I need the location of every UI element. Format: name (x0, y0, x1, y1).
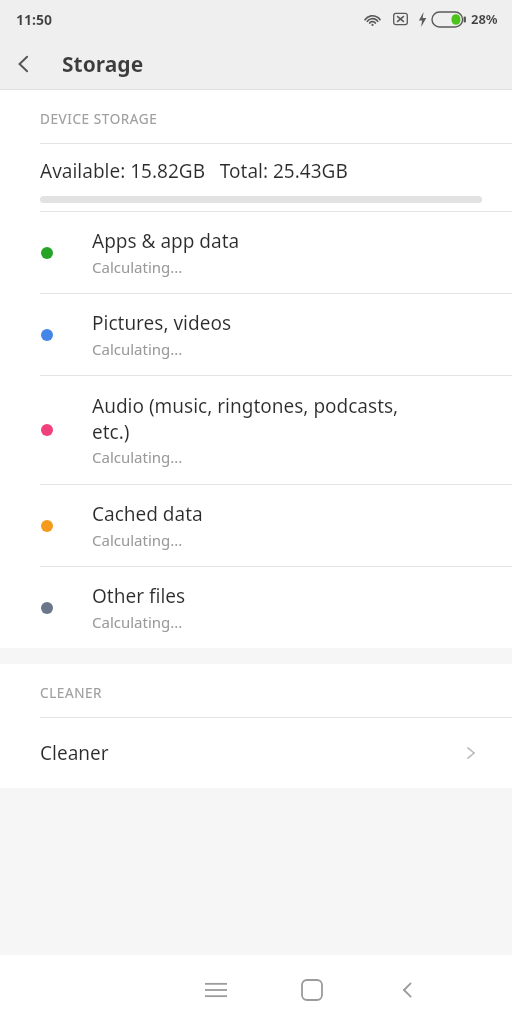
button[interactable]: Apps & app data (0, 212, 512, 293)
button[interactable]: Pictures, videos (0, 294, 512, 375)
button[interactable]: Recent apps (168, 955, 264, 1024)
staticText: Storage (62, 50, 144, 79)
staticText: Cached data (92, 501, 203, 527)
staticText: Calculating... (92, 447, 183, 467)
button[interactable]: Audio (music, ringtones, podcasts, etc.) (0, 376, 512, 484)
staticText: Audio (music, ringtones, podcasts, etc.) (92, 393, 399, 444)
staticText: Calculating... (92, 530, 183, 550)
staticText: Calculating... (92, 339, 183, 359)
button[interactable]: Cleaner (0, 718, 512, 788)
staticText: CLEANER (40, 684, 103, 702)
staticText: 11:50 (16, 10, 52, 29)
button[interactable]: Back (0, 40, 48, 88)
staticText: DEVICE STORAGE (40, 110, 158, 128)
staticText: Apps & app data (92, 228, 240, 254)
staticText: Cleaner (40, 740, 460, 766)
staticText: Pictures, videos (92, 310, 231, 336)
staticText: Calculating... (92, 257, 183, 277)
button[interactable]: Back (360, 955, 456, 1024)
staticText: 28% (471, 10, 498, 28)
button[interactable]: Other files (0, 567, 512, 648)
staticText: Other files (92, 583, 186, 609)
staticText: Calculating... (92, 612, 183, 632)
button[interactable]: Home (264, 955, 360, 1024)
button[interactable]: Cached data (0, 485, 512, 566)
staticText: Available: 15.82GB Total: 25.43GB (40, 158, 348, 184)
